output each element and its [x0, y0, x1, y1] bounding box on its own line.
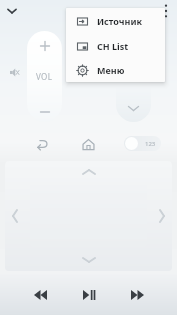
button[interactable]: Mute	[6, 64, 23, 81]
button[interactable]: CH List	[66, 33, 165, 58]
button[interactable]: Channel	[116, 31, 151, 122]
button[interactable]: Numeric keypad	[124, 136, 161, 151]
button[interactable]: Touchpad	[5, 161, 172, 271]
button[interactable]: Fast forward	[121, 279, 153, 311]
button[interactable]: Home	[76, 132, 100, 156]
button[interactable]: Volume	[27, 31, 62, 122]
button[interactable]: More options	[157, 0, 175, 22]
button[interactable]: Collapse	[2, 1, 22, 21]
button[interactable]: Источник	[66, 8, 165, 33]
button[interactable]: Меню	[66, 58, 165, 82]
staticText: VOL	[36, 71, 53, 82]
button[interactable]: Back	[30, 132, 54, 156]
staticText: Источник	[97, 15, 143, 27]
button[interactable]: Rewind	[24, 279, 56, 311]
staticText: CH List	[97, 40, 129, 52]
button[interactable]: Play or pause	[73, 279, 105, 311]
staticText: Меню	[97, 64, 125, 76]
staticText: 123	[145, 140, 156, 148]
